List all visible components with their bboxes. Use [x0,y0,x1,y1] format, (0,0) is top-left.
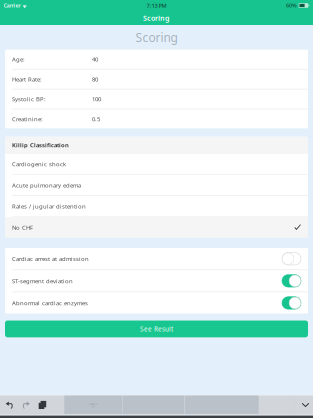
staticText: Abnormal cardiac enzymes [12,299,88,307]
staticText: Carrier [3,2,20,9]
button[interactable]: Cardiac arrest at admission [282,253,301,265]
button[interactable]: Abnormal cardiac enzymes [282,297,301,309]
staticText: “5” [89,401,97,409]
staticText: 7:13 PM [147,2,167,9]
staticText: 80 [92,75,98,83]
staticText: ST-segment deviation [12,277,73,285]
button[interactable]: Paste [38,400,47,409]
staticText: No CHF [12,223,33,231]
button[interactable]: No CHF [5,217,308,238]
staticText: Killip Classification [12,141,69,149]
button[interactable]: Redo [21,400,30,409]
staticText: Scoring [135,29,177,45]
staticText: Heart Rate: [12,75,42,83]
button[interactable]: See Result [0,320,313,337]
staticText: See Result [140,324,173,333]
staticText: Systolic BP: [12,95,46,103]
staticText: Creatinine: [12,115,43,123]
staticText: Acute pulmonary edema [12,181,81,189]
button[interactable]: Undo [5,400,14,409]
button[interactable]: Hide keyboard [300,400,309,409]
staticText: Cardiogenic shock [12,160,66,168]
button[interactable]: ST-segment deviation [282,275,301,287]
button[interactable]: Rales / jugular distention [5,196,308,217]
staticText: Cardiac arrest at admission [12,255,89,263]
staticText: 100 [92,95,101,103]
staticText: 0.5 [92,115,100,123]
staticText: Rales / jugular distention [12,202,86,210]
staticText: 60% [286,2,297,9]
button[interactable]: Cardiogenic shock [5,154,308,175]
staticText: 40 [92,55,98,63]
button[interactable]: Acute pulmonary edema [5,175,308,196]
staticText: Scoring [143,13,170,23]
staticText: Age: [12,55,25,63]
